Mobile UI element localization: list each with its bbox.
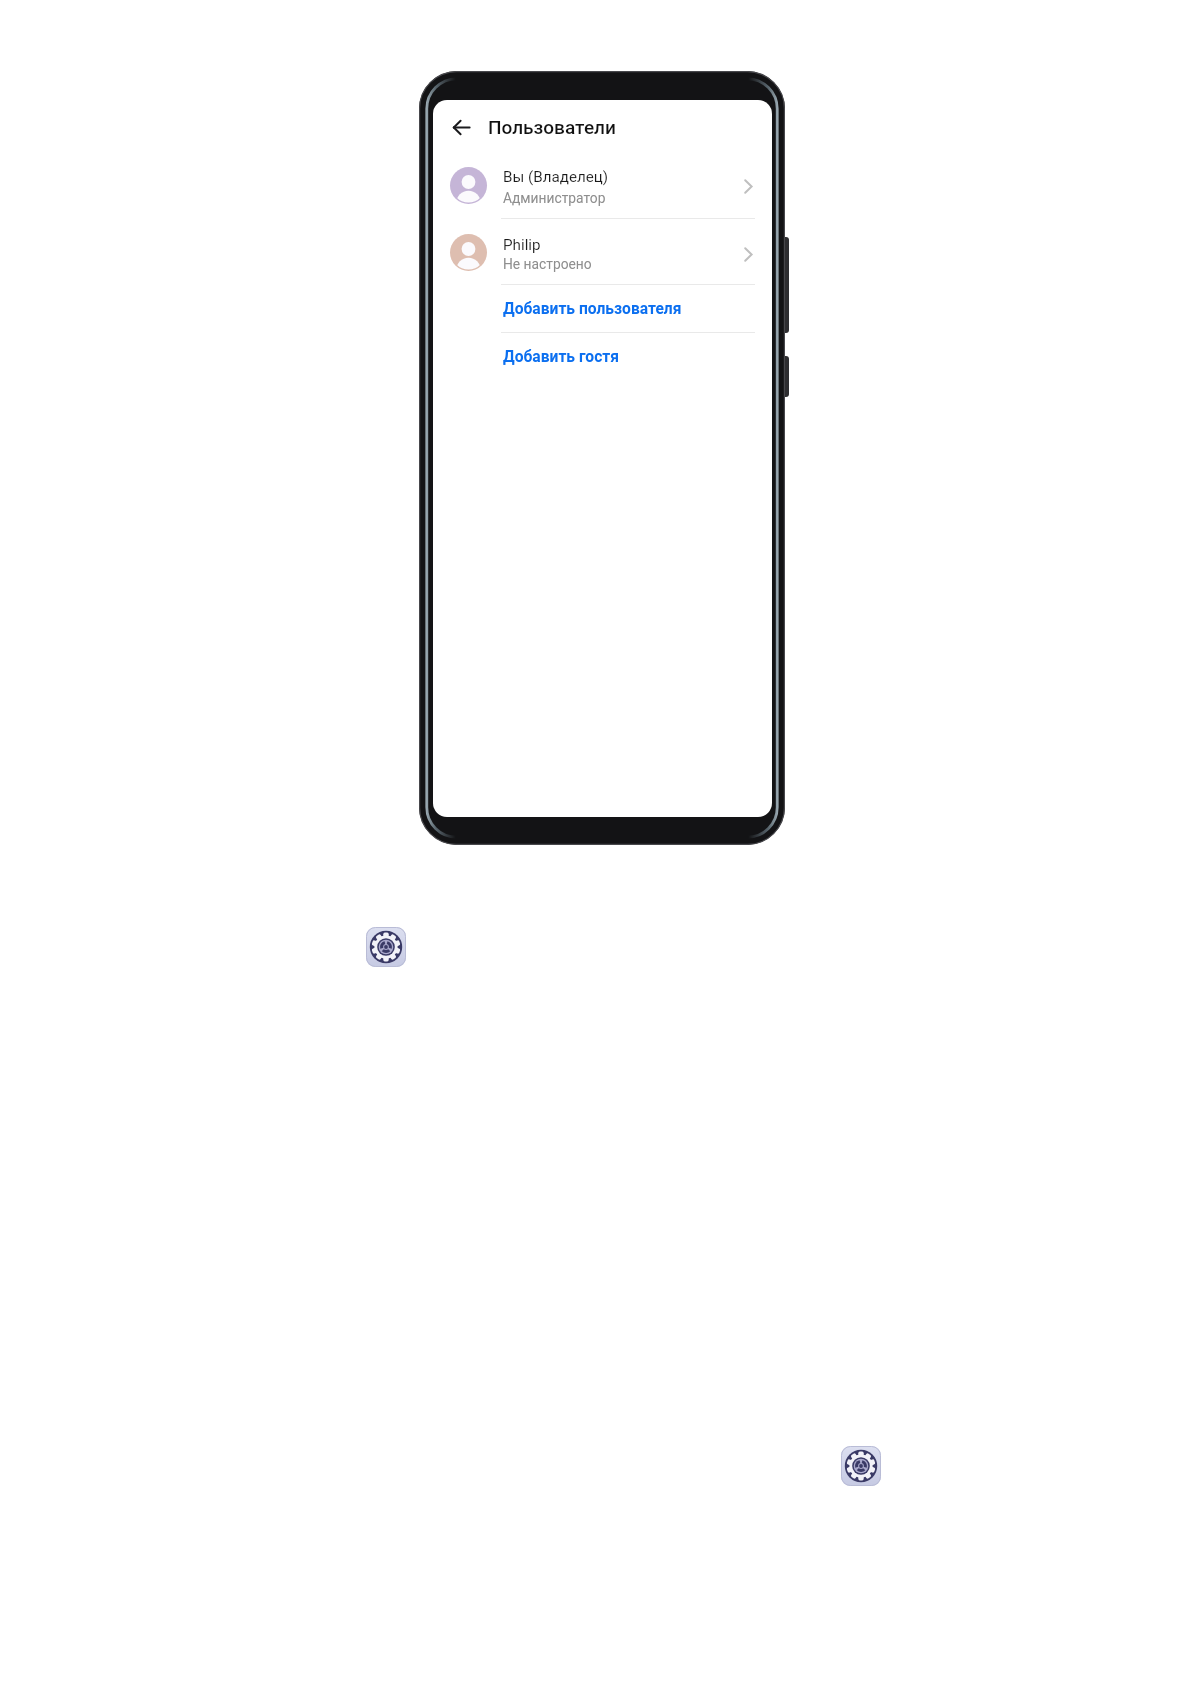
staticText: Администратор [503,190,606,206]
staticText: Добавить гостя [503,348,619,366]
button[interactable]: Добавить гостя [503,344,619,370]
staticText: Добавить пользователя [503,300,682,318]
staticText: Не настроено [503,256,592,272]
button[interactable] [366,927,406,967]
button[interactable] [433,152,772,218]
button[interactable] [433,219,772,285]
button[interactable]: Добавить пользователя [503,296,682,322]
staticText: Philip [503,236,541,254]
staticText: Вы (Владелец) [503,168,609,186]
button[interactable] [441,113,481,141]
staticText: Пользователи [488,116,616,138]
button[interactable] [841,1446,881,1486]
